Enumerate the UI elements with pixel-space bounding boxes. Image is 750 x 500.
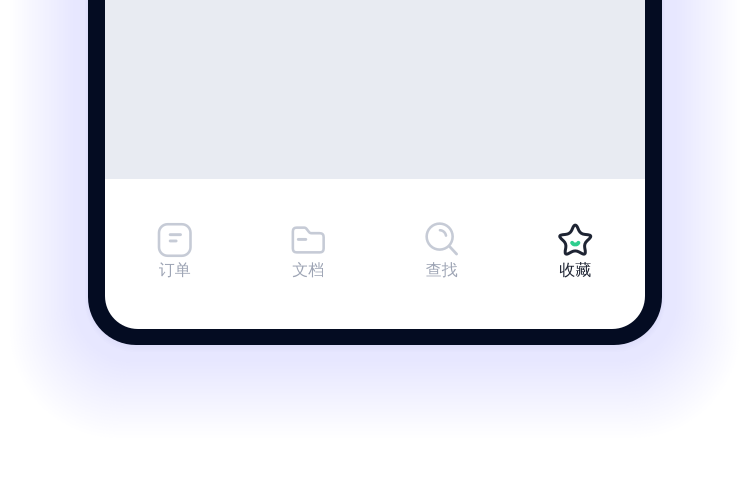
button[interactable]: 订单 bbox=[108, 222, 241, 329]
button[interactable]: 查找 bbox=[375, 222, 508, 329]
staticText: 收藏 bbox=[559, 260, 591, 280]
staticText: 查找 bbox=[426, 260, 458, 280]
staticText: 订单 bbox=[159, 260, 191, 280]
button[interactable]: 收藏 bbox=[508, 222, 642, 329]
button[interactable]: 文档 bbox=[241, 222, 375, 329]
staticText: 文档 bbox=[292, 260, 324, 280]
